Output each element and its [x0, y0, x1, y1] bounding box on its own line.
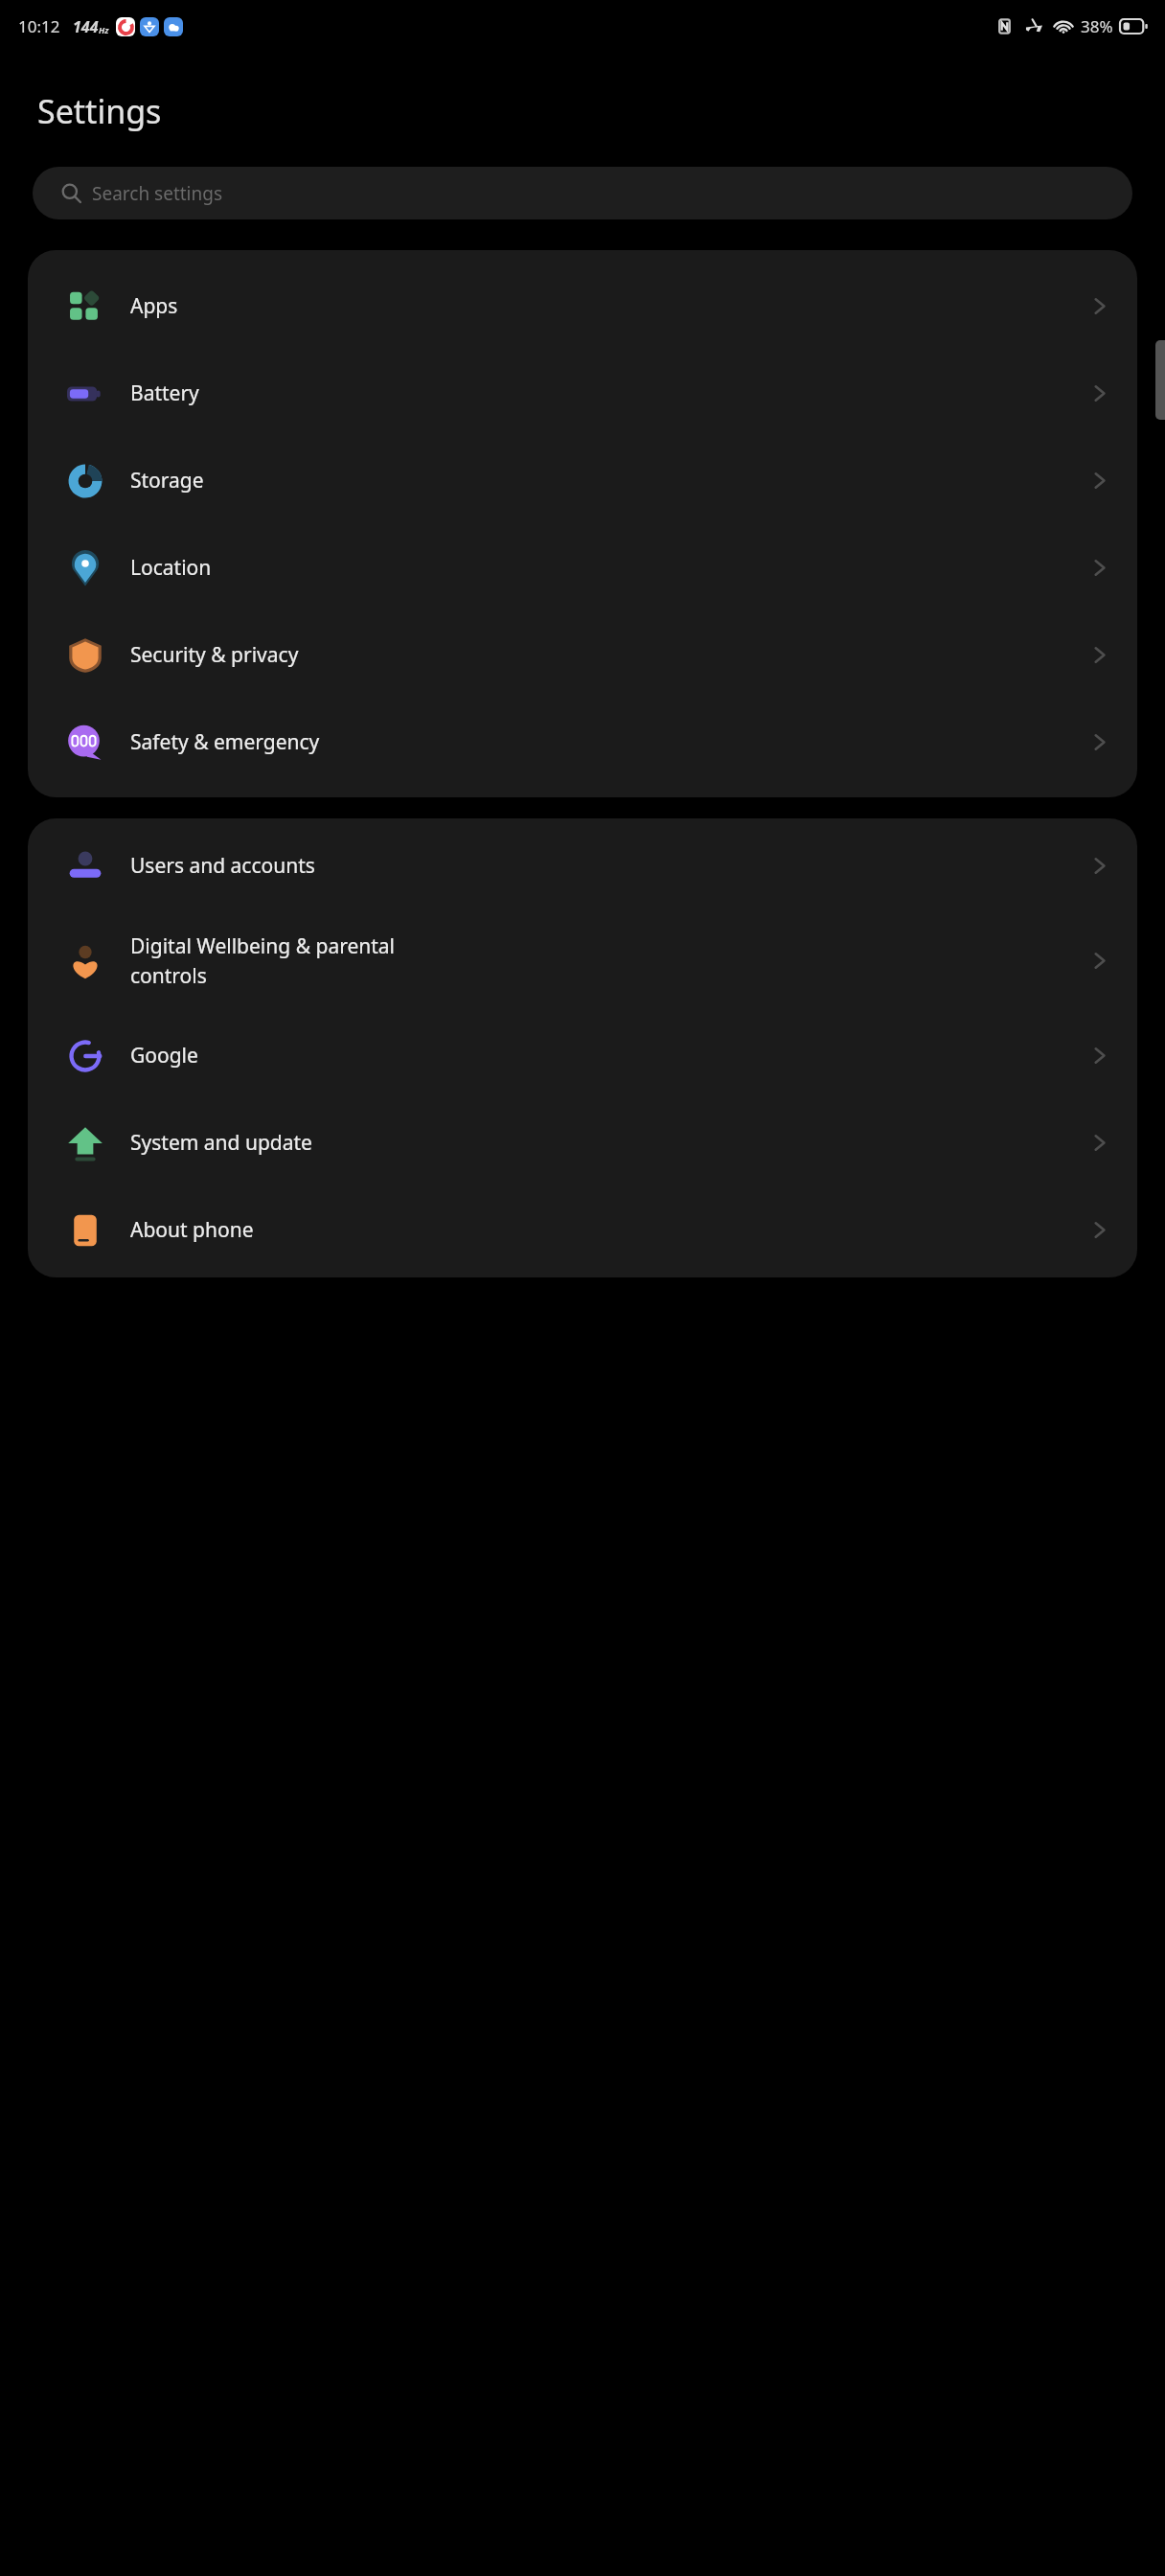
staticText: Settings: [37, 89, 162, 133]
staticText: Hz: [99, 24, 109, 35]
staticText: Apps: [130, 292, 1090, 320]
staticText: Storage: [130, 467, 1090, 494]
staticText: Battery: [130, 379, 1090, 407]
staticText: Search settings: [92, 181, 223, 206]
staticText: Safety & emergency: [130, 728, 1090, 756]
staticText: Google: [130, 1042, 1090, 1069]
button[interactable]: Safety & emergency: [28, 699, 1137, 786]
staticText: Users and accounts: [130, 852, 1090, 880]
button[interactable]: System and update: [28, 1099, 1137, 1186]
staticText: Security & privacy: [130, 641, 1090, 669]
button[interactable]: Battery: [28, 350, 1137, 437]
button[interactable]: Users and accounts: [28, 822, 1137, 909]
button[interactable]: Search settings: [33, 167, 1132, 219]
button[interactable]: Security & privacy: [28, 611, 1137, 699]
button[interactable]: Digital Wellbeing & parental controls: [28, 909, 1137, 1012]
button[interactable]: Location: [28, 524, 1137, 611]
staticText: Location: [130, 554, 1090, 582]
button[interactable]: About phone: [28, 1186, 1137, 1274]
button[interactable]: Apps: [28, 263, 1137, 350]
button[interactable]: Storage: [28, 437, 1137, 524]
staticText: 10:12: [18, 15, 60, 37]
staticText: 38%: [1081, 15, 1113, 37]
staticText: System and update: [130, 1129, 1090, 1157]
staticText: 144: [73, 16, 99, 37]
staticText: Digital Wellbeing & parental controls: [130, 932, 1090, 989]
staticText: About phone: [130, 1216, 1090, 1244]
button[interactable]: Google: [28, 1012, 1137, 1099]
